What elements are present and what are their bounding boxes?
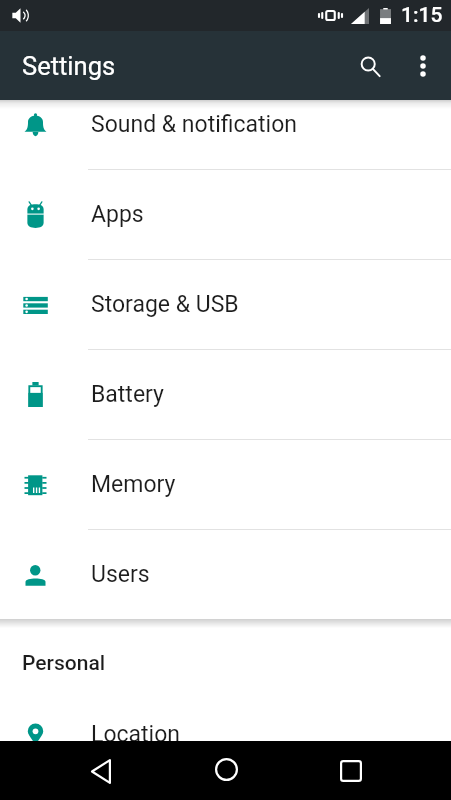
staticText: Location bbox=[91, 721, 180, 741]
staticText: Battery bbox=[91, 381, 164, 408]
staticText: Storage & USB bbox=[91, 291, 239, 318]
button[interactable]: Users bbox=[0, 530, 451, 619]
button[interactable]: Search bbox=[346, 42, 394, 90]
button[interactable]: Back bbox=[78, 749, 122, 793]
staticText: Memory bbox=[91, 471, 176, 498]
staticText: Users bbox=[91, 561, 150, 588]
staticText: Apps bbox=[91, 201, 144, 228]
button[interactable]: Storage & USB bbox=[0, 260, 451, 349]
staticText: Settings bbox=[22, 51, 116, 81]
button[interactable]: Home bbox=[204, 747, 248, 791]
button[interactable]: Recents bbox=[329, 749, 373, 793]
button[interactable]: Battery bbox=[0, 350, 451, 439]
button[interactable]: Memory bbox=[0, 440, 451, 529]
button[interactable]: More options bbox=[399, 42, 447, 90]
button[interactable]: Location bbox=[0, 690, 451, 741]
button[interactable]: Apps bbox=[0, 170, 451, 259]
button[interactable]: Sound & notification bbox=[0, 100, 451, 169]
staticText: Sound & notification bbox=[91, 111, 298, 138]
staticText: Personal bbox=[22, 651, 106, 676]
staticText: 1:15 bbox=[401, 3, 443, 28]
